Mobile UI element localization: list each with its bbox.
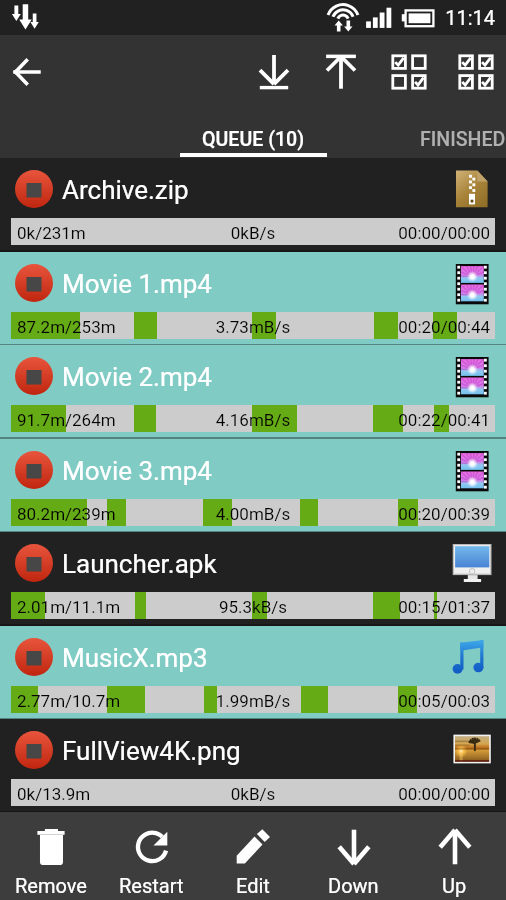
button[interactable]: Launcher.apk [0,532,506,626]
staticText: 0kB/s [11,223,495,243]
staticText: 3.73mB/s [11,317,495,337]
staticText: 11:14 [0,6,495,29]
staticText: Down [328,874,379,897]
staticText: Remove [15,874,87,897]
button[interactable]: Archive.zip [0,158,506,252]
staticText: QUEUE (10) [202,128,305,151]
staticText: 80.2m/239m [17,504,116,524]
button[interactable]: FullView4K.png [0,719,506,813]
staticText: 2.01m/11.1m [17,597,121,617]
staticText: Movie 3.mp4 [62,456,212,486]
button[interactable]: Edit [202,812,303,900]
button[interactable]: Invert selection [383,46,435,98]
staticText: 87.2m/253m [17,317,116,337]
staticText: 00:20/00:44 [6,317,490,337]
staticText: 00:00/00:00 [6,784,490,804]
button[interactable]: Upload [315,46,367,98]
button[interactable]: Up [404,812,505,900]
button[interactable]: Remove [0,812,101,900]
staticText: 0kB/s [11,784,495,804]
button[interactable]: Select all [450,46,502,98]
staticText: 91.7m/264m [17,410,116,430]
staticText: Launcher.apk [62,549,217,579]
staticText: Movie 1.mp4 [62,269,212,299]
staticText: 00:15/01:37 [6,597,490,617]
staticText: 2.77m/10.7m [17,691,121,711]
button[interactable]: QUEUE (10) [180,115,327,158]
button[interactable]: Back [1,46,53,98]
staticText: 95.3kB/s [11,597,495,617]
button[interactable]: Movie 2.mp4 [0,345,506,439]
staticText: 1.99mB/s [11,691,495,711]
staticText: FullView4K.png [62,736,241,766]
staticText: Up [442,874,467,897]
staticText: Restart [119,874,184,897]
staticText: 4.16mB/s [11,410,495,430]
button[interactable]: Down [303,812,404,900]
staticText: 00:05/00:03 [6,691,490,711]
button[interactable]: FINISHED [399,115,506,158]
staticText: Movie 2.mp4 [62,362,212,392]
button[interactable]: Restart [101,812,202,900]
staticText: 00:22/00:41 [6,410,490,430]
button[interactable]: MusicX.mp3 [0,626,506,720]
staticText: 00:00/00:00 [6,223,490,243]
staticText: 0k/13.9m [17,784,91,804]
staticText: Archive.zip [62,175,189,205]
staticText: 00:20/00:39 [6,504,490,524]
button[interactable]: Download [248,46,300,98]
staticText: MusicX.mp3 [62,643,208,673]
staticText: Edit [236,874,270,897]
button[interactable]: Movie 3.mp4 [0,439,506,533]
staticText: FINISHED [420,128,506,151]
staticText: 4.00mB/s [11,504,495,524]
staticText: 0k/231m [17,223,86,243]
button[interactable]: Movie 1.mp4 [0,252,506,346]
